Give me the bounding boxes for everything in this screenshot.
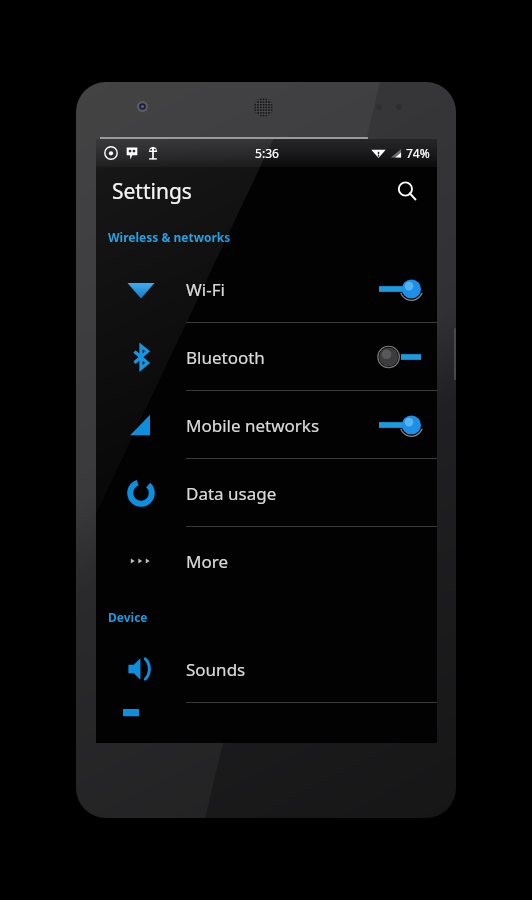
staticText: Sounds <box>186 658 437 681</box>
staticText: Mobile networks <box>186 414 375 437</box>
staticText: More <box>186 550 437 573</box>
button[interactable]: Data usage <box>96 459 437 527</box>
staticText: Data usage <box>186 482 437 505</box>
staticText: Wi-Fi <box>186 278 375 301</box>
button[interactable]: Bluetooth toggle <box>375 337 425 377</box>
button[interactable]: Sounds <box>96 635 437 703</box>
staticText: 74% <box>406 145 430 161</box>
button[interactable]: Wi-Fi <box>96 255 437 323</box>
button[interactable]: More <box>96 527 437 595</box>
button[interactable]: Wi-Fi toggle <box>375 269 425 309</box>
button[interactable]: Mobile networks toggle <box>375 405 425 445</box>
staticText: 5:36 <box>255 145 279 161</box>
staticText: Settings <box>112 177 192 206</box>
button[interactable]: Search <box>387 171 427 211</box>
button[interactable]: Mobile networks <box>96 391 437 459</box>
staticText: Bluetooth <box>186 346 375 369</box>
button[interactable]: Bluetooth <box>96 323 437 391</box>
button[interactable]: Settings <box>96 167 437 215</box>
staticText: Wireless & networks <box>108 229 231 245</box>
staticText: Device <box>108 609 148 625</box>
